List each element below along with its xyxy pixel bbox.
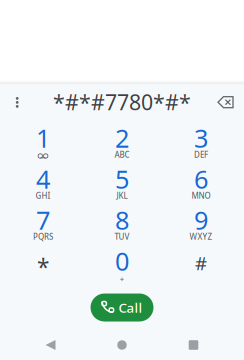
staticText: GHI xyxy=(35,190,50,201)
button[interactable]: 9 xyxy=(161,203,240,244)
button[interactable]: More options xyxy=(0,85,36,121)
button[interactable]: Delete xyxy=(208,85,244,121)
button[interactable]: 0 xyxy=(82,244,161,285)
button[interactable]: 5 xyxy=(82,162,161,203)
staticText: Call xyxy=(118,299,142,316)
staticText: ABC xyxy=(114,149,129,160)
button[interactable]: 2 xyxy=(82,121,161,162)
staticText: MNO xyxy=(191,190,210,201)
staticText: 7 xyxy=(36,203,50,237)
staticText: 3 xyxy=(194,121,208,155)
button[interactable]: # xyxy=(161,244,240,285)
button[interactable]: 7 xyxy=(3,203,82,244)
button[interactable]: 3 xyxy=(161,121,240,162)
button[interactable]: 1 xyxy=(3,121,82,162)
button[interactable]: 4 xyxy=(3,162,82,203)
button[interactable]: Home xyxy=(92,330,151,360)
staticText: 4 xyxy=(36,162,50,196)
staticText: 8 xyxy=(115,203,129,237)
staticText: 1 xyxy=(36,121,50,155)
staticText: DEF xyxy=(194,149,208,160)
staticText: # xyxy=(195,251,207,275)
staticText: 9 xyxy=(194,203,208,237)
staticText: 6 xyxy=(194,162,208,196)
staticText: PQRS xyxy=(33,231,53,242)
button[interactable]: Call xyxy=(90,293,153,321)
staticText: JKL xyxy=(116,190,127,201)
button[interactable]: 8 xyxy=(82,203,161,244)
staticText: * xyxy=(37,252,49,282)
button[interactable]: Back xyxy=(21,330,80,360)
button[interactable]: Recents xyxy=(164,330,223,360)
staticText: *#*#7780*#* xyxy=(53,88,191,116)
button[interactable]: 6 xyxy=(161,162,240,203)
staticText: WXYZ xyxy=(189,231,212,242)
staticText: 5 xyxy=(115,162,129,196)
staticText: TUV xyxy=(114,231,129,242)
staticText: 0 xyxy=(115,244,129,278)
button[interactable]: * xyxy=(3,244,82,285)
staticText: 2 xyxy=(115,121,129,155)
